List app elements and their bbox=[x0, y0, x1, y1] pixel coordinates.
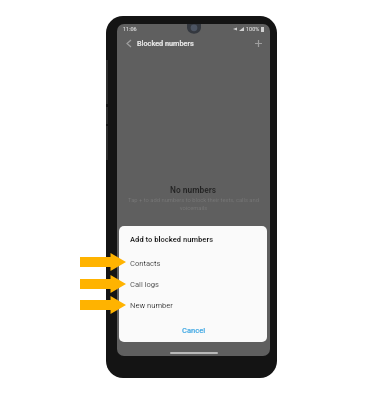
button[interactable]: New number bbox=[119, 295, 267, 316]
button[interactable]: Back bbox=[121, 36, 136, 51]
staticText: No numbers bbox=[170, 185, 217, 195]
button[interactable]: Add number bbox=[251, 36, 266, 51]
staticText: Add to blocked numbers bbox=[130, 235, 214, 244]
staticText: Cancel bbox=[182, 326, 206, 335]
button[interactable]: Add to blocked numbers bbox=[130, 235, 214, 244]
staticText: Call logs bbox=[130, 280, 160, 289]
button[interactable]: Call logs bbox=[119, 274, 267, 295]
button[interactable]: Cancel bbox=[120, 321, 267, 339]
staticText: 100% bbox=[246, 26, 260, 32]
button[interactable]: Contacts bbox=[119, 253, 267, 274]
staticText: Blocked numbers bbox=[137, 39, 194, 48]
staticText: Tap + to add numbers to block their text… bbox=[127, 197, 260, 211]
staticText: Contacts bbox=[130, 259, 161, 268]
staticText: 11:06 bbox=[123, 26, 137, 32]
staticText: New number bbox=[130, 301, 173, 310]
